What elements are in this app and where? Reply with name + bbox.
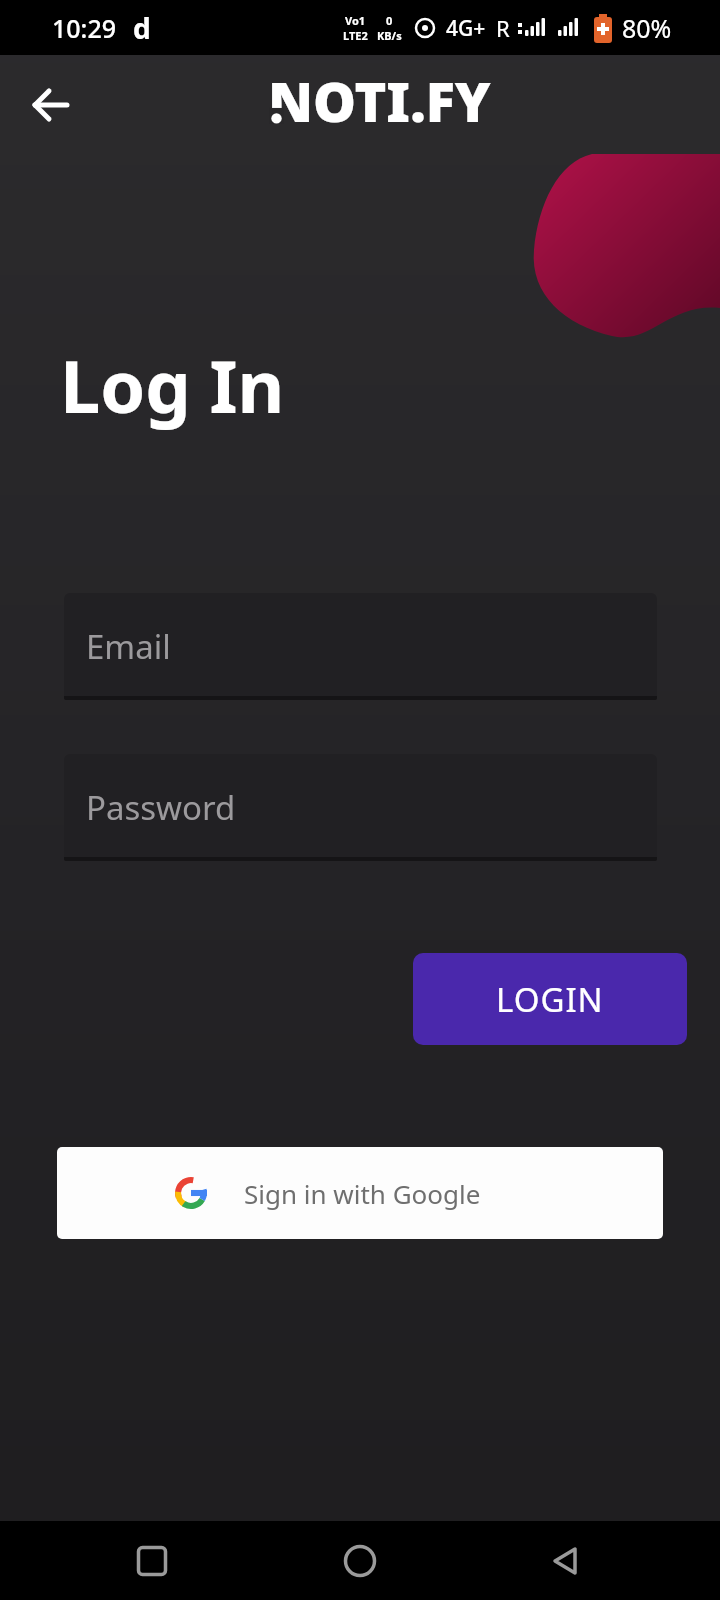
- staticText: LTE2: [343, 28, 368, 43]
- staticText: Log In: [60, 336, 285, 434]
- staticText: 0: [386, 13, 393, 28]
- staticText: R: [496, 13, 510, 43]
- button[interactable]: Email: [64, 593, 657, 700]
- button[interactable]: LOGIN: [413, 953, 687, 1045]
- button[interactable]: Sign in with Google: [57, 1147, 663, 1239]
- staticText: 80%: [622, 11, 672, 45]
- staticText: Sign in with Google: [244, 1176, 481, 1211]
- button[interactable]: Password: [64, 754, 657, 861]
- staticText: d: [133, 9, 151, 47]
- staticText: Password: [86, 785, 236, 830]
- staticText: 10:29: [52, 11, 117, 45]
- button[interactable]: [127, 1536, 177, 1586]
- button[interactable]: [26, 80, 76, 130]
- staticText: Email: [86, 624, 171, 669]
- staticText: 4G+: [446, 14, 486, 43]
- button[interactable]: [335, 1536, 385, 1586]
- staticText: Vo1: [345, 13, 366, 28]
- staticText: NOTI.FY: [268, 64, 491, 138]
- button[interactable]: [541, 1536, 591, 1586]
- staticText: KB/s: [377, 28, 402, 43]
- staticText: LOGIN: [496, 977, 604, 1022]
